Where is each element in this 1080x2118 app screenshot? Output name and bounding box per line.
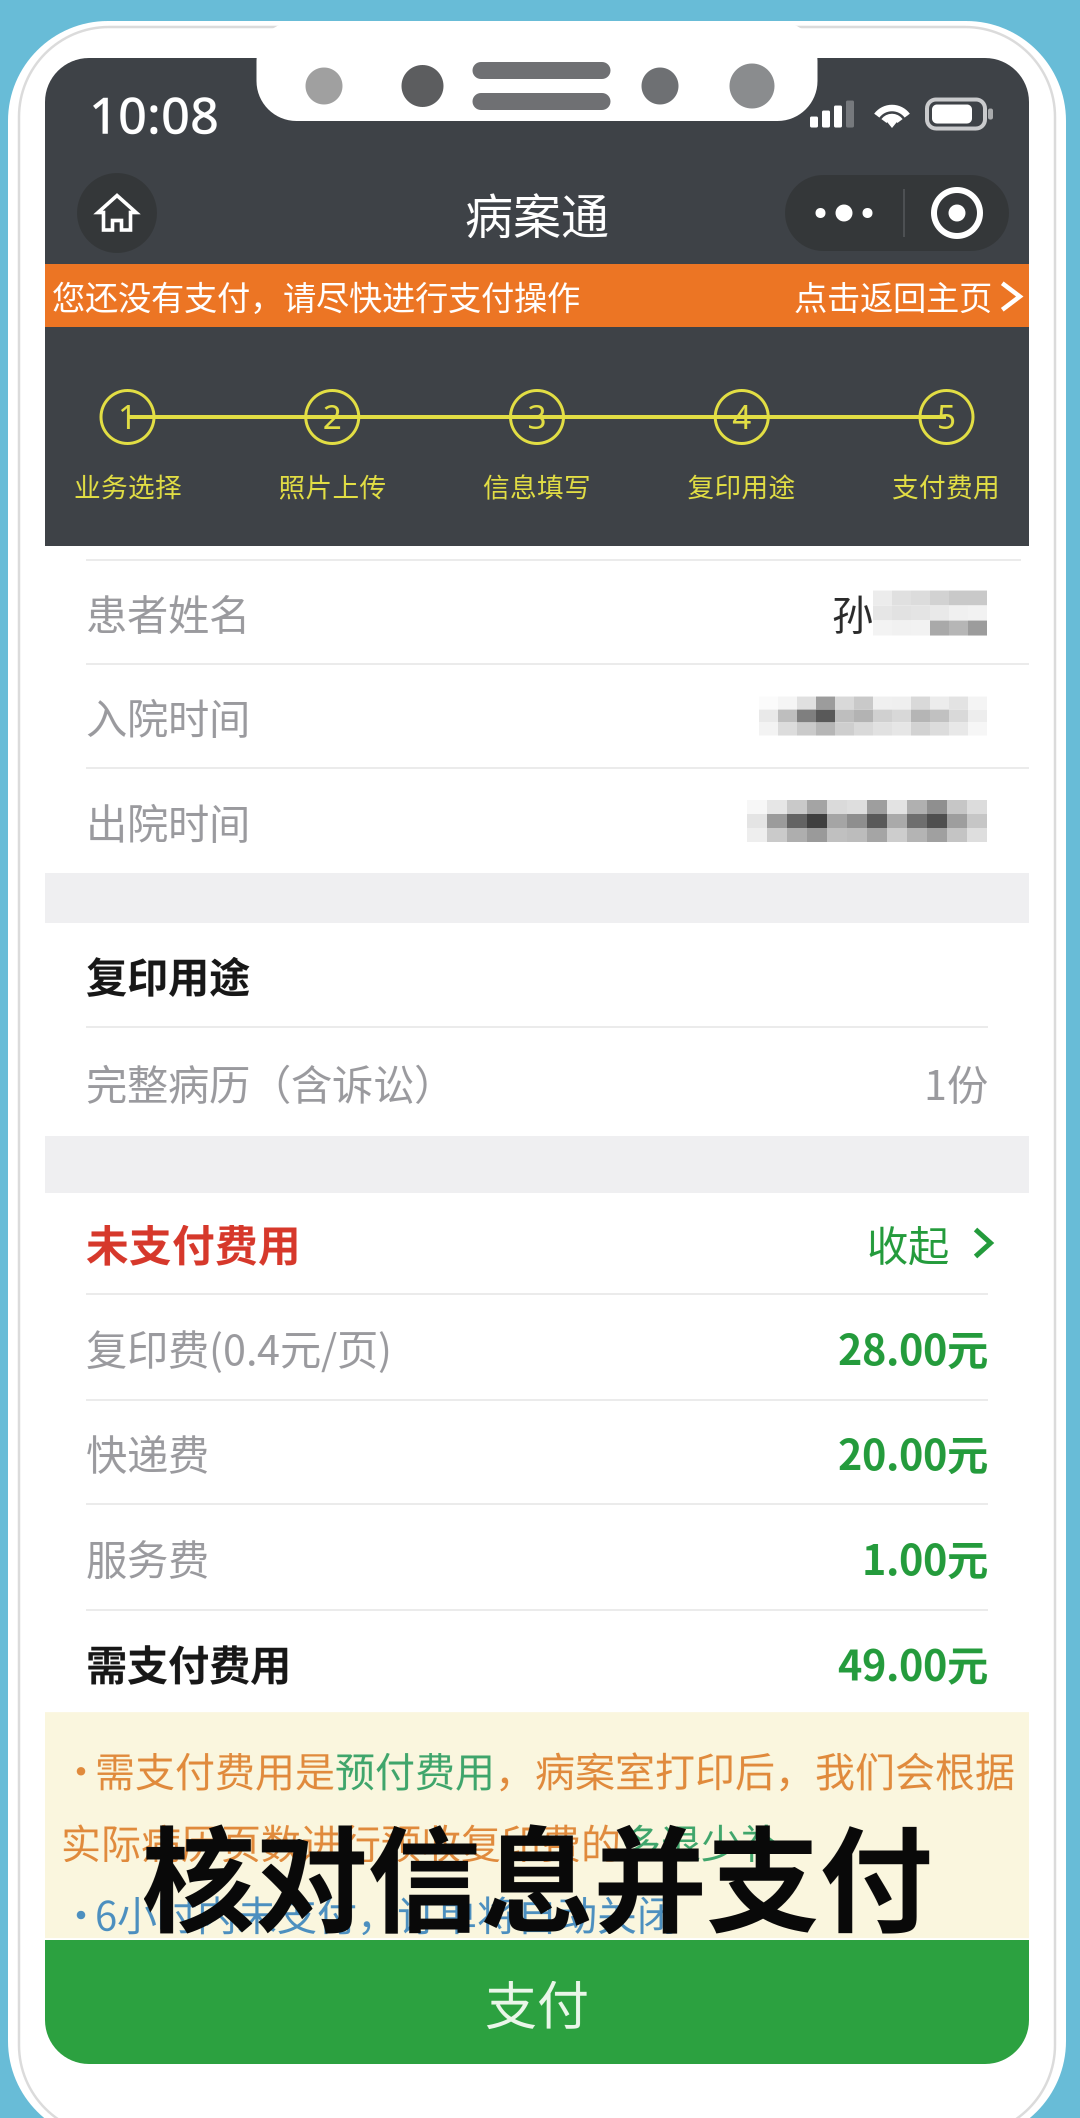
staticText: 支付费用 xyxy=(892,466,1000,505)
staticText: 49.00元 xyxy=(838,1633,988,1692)
staticText: 1 xyxy=(118,393,137,439)
staticText: 完整病历（含诉讼） xyxy=(86,1052,455,1112)
button[interactable]: Home xyxy=(77,173,157,253)
staticText: ，病案室打印后，我们会根据 xyxy=(495,1740,1015,1798)
staticText: 业务选择 xyxy=(74,466,182,505)
staticText: 1.00元 xyxy=(862,1527,988,1587)
staticText: 支付 xyxy=(485,1964,589,2040)
button[interactable]: 您还没有支付，请尽快进行支付操作 xyxy=(45,264,1029,327)
staticText: 您还没有支付，请尽快进行支付操作 xyxy=(52,271,580,320)
staticText: · xyxy=(61,1740,101,1798)
staticText: 病案通 xyxy=(465,178,609,248)
staticText: 预付费用 xyxy=(335,1740,495,1798)
staticText: 信息填写 xyxy=(483,466,591,505)
button[interactable]: 未支付费用 xyxy=(45,1193,1029,1293)
staticText: 实际病历页数进行预收复印费的 xyxy=(61,1812,621,1870)
staticText: 照片上传 xyxy=(278,466,386,505)
staticText: 孙 xyxy=(832,582,873,642)
staticText: 需支付费用 xyxy=(86,1633,291,1692)
staticText: 快递费 xyxy=(86,1422,209,1482)
staticText: 2 xyxy=(323,393,342,439)
staticText: 出院时间 xyxy=(86,791,250,851)
staticText: 20.00元 xyxy=(838,1422,988,1482)
staticText: 复印用途 xyxy=(687,466,795,505)
staticText: 5 xyxy=(937,393,956,439)
staticText: 复印用途 xyxy=(86,945,250,1004)
staticText: 未支付费用 xyxy=(86,1212,301,1274)
staticText: · xyxy=(61,1884,101,1942)
staticText: 10:08 xyxy=(89,79,219,148)
staticText: 点击返回主页 xyxy=(794,271,992,320)
staticText: 多退少补 xyxy=(621,1812,781,1870)
staticText: 入院时间 xyxy=(86,686,250,746)
staticText: 28.00元 xyxy=(838,1317,988,1377)
staticText: 患者姓名 xyxy=(86,582,250,642)
staticText: 需支付费用是 xyxy=(95,1740,335,1798)
staticText: 6小时内未支付，订单将自动关闭 xyxy=(95,1884,677,1942)
button[interactable]: More options xyxy=(785,175,1009,251)
staticText: 3 xyxy=(527,393,546,439)
staticText: 复印费(0.4元/页) xyxy=(86,1317,392,1377)
button[interactable]: 支付 xyxy=(45,1940,1029,2064)
staticText: 收起 xyxy=(867,1213,949,1273)
staticText: 4 xyxy=(732,393,751,439)
staticText: 1份 xyxy=(924,1052,988,1112)
staticText: 服务费 xyxy=(86,1527,209,1587)
staticText: 核对信息并支付 xyxy=(141,1791,932,1955)
